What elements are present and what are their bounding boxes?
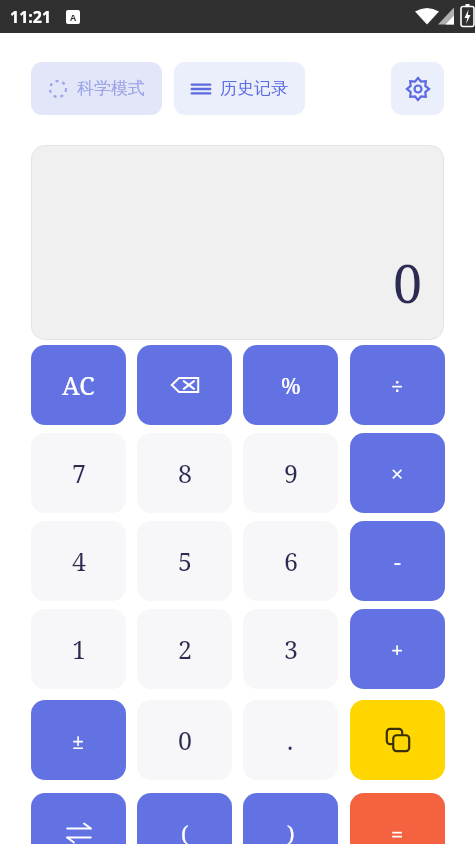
staticText: 0 — [392, 247, 422, 318]
button[interactable]: 7 — [31, 433, 126, 513]
button[interactable]: = — [350, 793, 445, 844]
staticText: - — [394, 546, 401, 576]
button[interactable]: ÷ — [350, 345, 445, 425]
button[interactable]: + — [350, 609, 445, 689]
staticText: 6 — [284, 544, 298, 578]
staticText: + — [391, 634, 404, 664]
button[interactable]: . — [243, 700, 338, 780]
button[interactable]: ( — [137, 793, 232, 844]
button[interactable]: 6 — [243, 521, 338, 601]
button[interactable]: ± — [31, 700, 126, 780]
staticText: % — [281, 370, 301, 400]
button[interactable]: 0 — [31, 145, 444, 340]
button[interactable]: Swap — [31, 793, 126, 844]
staticText: 3 — [284, 632, 298, 666]
button[interactable]: Backspace — [137, 345, 232, 425]
staticText: 历史记录 — [220, 78, 288, 99]
staticText: × — [391, 458, 404, 488]
button[interactable]: % — [243, 345, 338, 425]
staticText: ÷ — [391, 370, 404, 400]
button[interactable]: 1 — [31, 609, 126, 689]
button[interactable]: 0 — [137, 700, 232, 780]
staticText: 0 — [178, 723, 192, 757]
staticText: 2 — [178, 632, 192, 666]
staticText: = — [391, 818, 404, 844]
button[interactable]: ) — [243, 793, 338, 844]
staticText: 4 — [72, 544, 86, 578]
staticText: 1 — [72, 632, 86, 666]
button[interactable]: 2 — [137, 609, 232, 689]
staticText: 7 — [72, 456, 86, 490]
button[interactable]: - — [350, 521, 445, 601]
button[interactable]: 科学模式 — [31, 62, 162, 115]
button[interactable]: 历史记录 — [174, 62, 305, 115]
staticText: ( — [181, 818, 189, 844]
button[interactable]: 8 — [137, 433, 232, 513]
staticText: 9 — [284, 456, 298, 490]
staticText: 5 — [178, 544, 192, 578]
button[interactable]: 4 — [31, 521, 126, 601]
button[interactable]: × — [350, 433, 445, 513]
button[interactable]: 3 — [243, 609, 338, 689]
button[interactable]: AC — [31, 345, 126, 425]
staticText: 11:21 — [10, 6, 52, 28]
button[interactable]: 5 — [137, 521, 232, 601]
staticText: 科学模式 — [77, 78, 145, 99]
staticText: ± — [72, 725, 85, 755]
staticText: ) — [287, 818, 295, 844]
button[interactable]: 9 — [243, 433, 338, 513]
staticText: 8 — [178, 456, 192, 490]
staticText: . — [287, 723, 294, 757]
staticText: AC — [62, 368, 95, 402]
button[interactable]: Settings — [391, 62, 444, 115]
button[interactable]: Copy — [350, 700, 445, 780]
staticText: A — [70, 11, 77, 23]
